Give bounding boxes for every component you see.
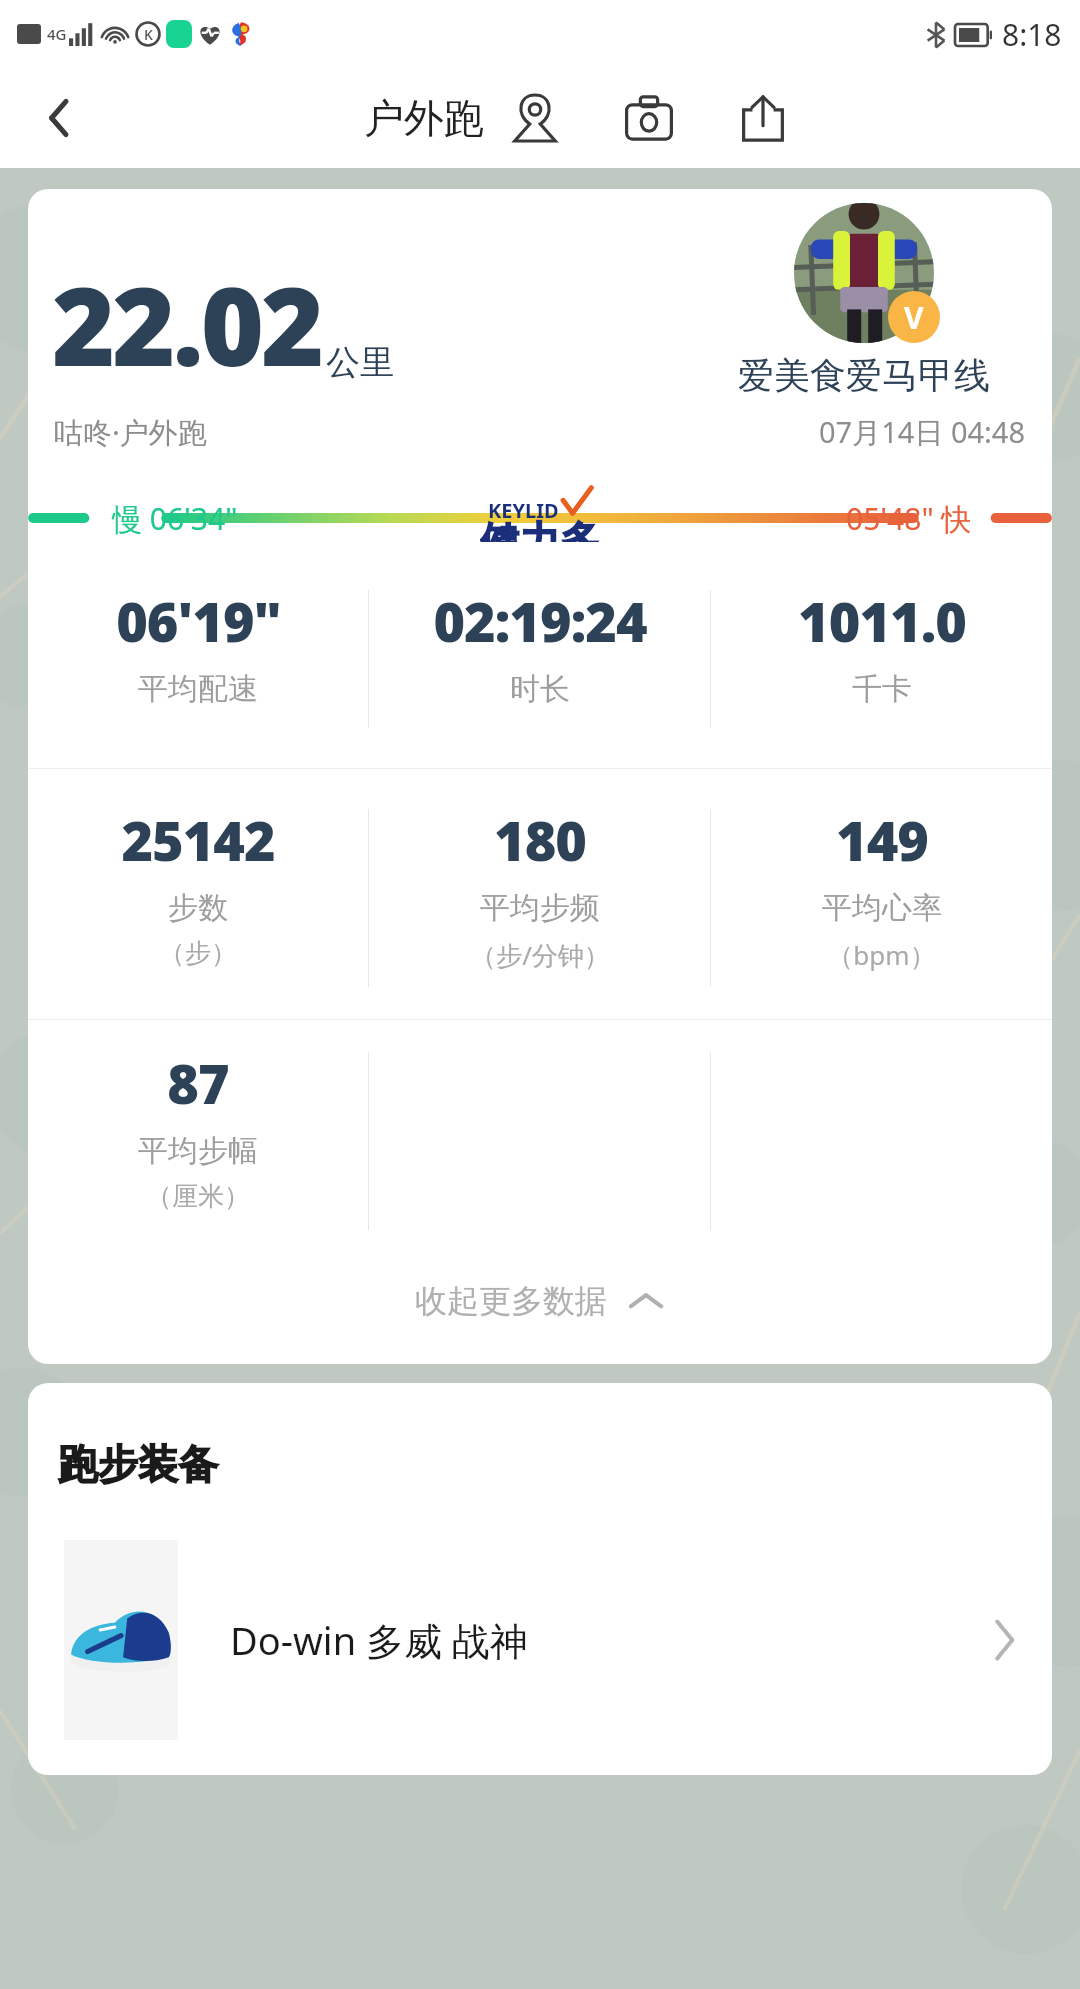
staticText: 时长 — [510, 670, 570, 708]
staticText: KEYLID — [488, 497, 559, 524]
staticText: 4G — [47, 24, 67, 44]
staticText: 收起更多数据 — [415, 1281, 607, 1321]
staticText: 02:19:24 — [433, 584, 647, 658]
staticText: 平均步幅 — [138, 1132, 258, 1170]
button[interactable]: Camera — [620, 89, 678, 147]
staticText: 1011.0 — [798, 584, 966, 658]
staticText: 千卡 — [852, 670, 912, 708]
staticText: （厘米） — [146, 1180, 250, 1213]
staticText: 180 — [494, 803, 586, 877]
button[interactable]: Do-win 多威 战神 — [28, 1535, 1052, 1745]
staticText: 8:18 — [1002, 14, 1062, 55]
staticText: （步/分钟） — [470, 937, 610, 973]
button[interactable]: Share — [734, 89, 792, 147]
staticText: 87 — [167, 1046, 229, 1120]
staticText: 步数 — [168, 889, 228, 927]
staticText: 慢 06'34" — [112, 498, 238, 539]
staticText: Do-win 多威 战神 — [230, 1614, 528, 1666]
staticText: 健力多 — [480, 516, 600, 542]
staticText: 05'48" 快 — [846, 498, 972, 539]
staticText: 公里 — [326, 341, 394, 384]
staticText: 149 — [836, 803, 928, 877]
staticText: 爱美食爱马甲线 — [738, 353, 990, 398]
staticText: K — [144, 25, 153, 44]
staticText: V — [904, 297, 924, 338]
staticText: 平均步频 — [480, 889, 600, 927]
staticText: 户外跑 — [364, 93, 484, 143]
button[interactable]: 收起更多数据 — [28, 1266, 1052, 1336]
staticText: 07月14日 04:48 — [819, 412, 1026, 452]
button[interactable]: Back — [32, 90, 88, 146]
staticText: 06'19" — [116, 584, 281, 658]
button[interactable]: Map — [506, 89, 564, 147]
staticText: 平均心率 — [822, 889, 942, 927]
staticText: 咕咚·户外跑 — [54, 412, 207, 452]
staticText: （bpm） — [827, 937, 936, 973]
staticText: 25142 — [121, 803, 275, 877]
staticText: 22.02 — [52, 251, 322, 398]
staticText: 跑步装备 — [58, 1439, 218, 1489]
staticText: （步） — [159, 937, 237, 970]
staticText: 平均配速 — [138, 670, 258, 708]
